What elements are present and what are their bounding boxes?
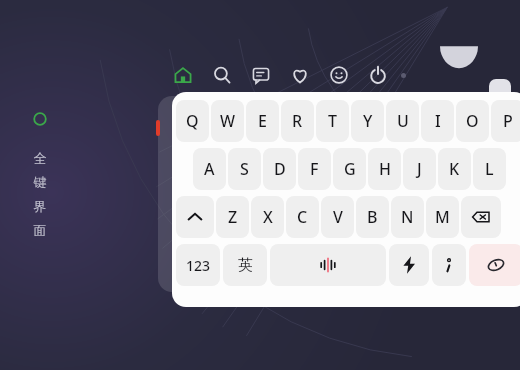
button[interactable]: Favorites (289, 64, 311, 86)
staticText: 面 (22, 222, 58, 238)
button[interactable] (158, 96, 478, 292)
button[interactable]: X (251, 196, 284, 238)
staticText: X (263, 206, 273, 228)
staticText: O (466, 110, 479, 132)
button[interactable]: Emoji (328, 64, 350, 86)
staticText: L (485, 158, 494, 180)
button[interactable]: P (491, 100, 520, 142)
button[interactable]: N (391, 196, 424, 238)
button[interactable]: 英 (223, 244, 267, 286)
staticText: 界 (22, 198, 58, 214)
staticText: D (274, 158, 286, 180)
staticText: C (297, 206, 308, 228)
button[interactable]: R (281, 100, 314, 142)
button[interactable]: D (263, 148, 296, 190)
button[interactable]: Voice input (270, 244, 386, 286)
staticText: 英 (238, 256, 253, 275)
staticText: R (292, 110, 303, 132)
button[interactable]: J (403, 148, 436, 190)
button[interactable]: Backspace (461, 196, 501, 238)
staticText: T (328, 110, 337, 132)
button[interactable]: Power (367, 64, 389, 86)
button[interactable]: C (286, 196, 319, 238)
button[interactable]: M (426, 196, 459, 238)
staticText: I (435, 110, 441, 132)
staticText: E (258, 110, 267, 132)
button[interactable]: F (298, 148, 331, 190)
button[interactable]: A (193, 148, 226, 190)
staticText: 123 (186, 256, 211, 275)
staticText: K (449, 158, 460, 180)
staticText: F (310, 158, 319, 180)
button[interactable]: Messages (250, 64, 272, 86)
button[interactable]: W (211, 100, 244, 142)
button[interactable]: G (333, 148, 366, 190)
button[interactable]: Z (216, 196, 249, 238)
button[interactable]: Shift (176, 196, 214, 238)
staticText: Q (186, 110, 199, 132)
button[interactable]: 全键界面 (22, 112, 58, 246)
staticText: P (503, 110, 513, 132)
button[interactable]: Punctuation (432, 244, 466, 286)
button[interactable]: U (386, 100, 419, 142)
button[interactable]: B (356, 196, 389, 238)
button[interactable]: Enter (469, 244, 520, 286)
staticText: S (240, 158, 249, 180)
staticText: W (220, 110, 236, 132)
staticText: H (379, 158, 391, 180)
staticText: A (204, 158, 215, 180)
button[interactable]: L (473, 148, 506, 190)
staticText: J (417, 158, 422, 180)
staticText: N (401, 206, 414, 228)
staticText: V (333, 206, 343, 228)
button[interactable]: I (421, 100, 454, 142)
button[interactable]: Search (211, 64, 233, 86)
staticText: B (367, 206, 378, 228)
button[interactable]: O (456, 100, 489, 142)
staticText: G (344, 158, 356, 180)
button[interactable]: Quick action (389, 244, 429, 286)
button[interactable]: V (321, 196, 354, 238)
staticText: M (435, 206, 450, 228)
button[interactable]: K (438, 148, 471, 190)
staticText: 全 (22, 150, 58, 166)
button[interactable]: H (368, 148, 401, 190)
button[interactable]: 123 (176, 244, 220, 286)
button[interactable]: S (228, 148, 261, 190)
button[interactable]: T (316, 100, 349, 142)
staticText: 键 (22, 174, 58, 190)
button[interactable]: E (246, 100, 279, 142)
button[interactable]: Home (172, 64, 194, 86)
staticText: U (397, 110, 409, 132)
staticText: Z (228, 206, 238, 228)
button[interactable]: Y (351, 100, 384, 142)
staticText: Y (363, 110, 373, 132)
button[interactable]: Q (176, 100, 209, 142)
